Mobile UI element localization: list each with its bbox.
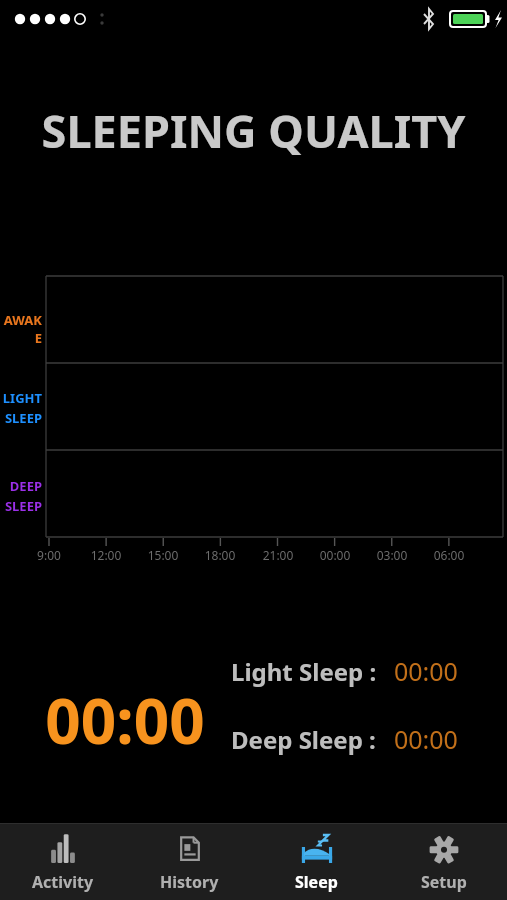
staticText: 12:00 — [81, 547, 131, 563]
staticText: 03:00 — [367, 547, 417, 563]
button[interactable]: History — [126, 824, 253, 900]
button[interactable]: Activity — [0, 824, 126, 900]
staticText: Setup — [421, 871, 467, 893]
staticText: 00:00 — [394, 654, 458, 688]
staticText: Light Sleep : — [231, 655, 377, 688]
staticText: SLEEPING QUALITY — [0, 100, 507, 161]
staticText: SLEEP — [0, 497, 42, 515]
staticText: 00:00 — [310, 547, 360, 563]
staticText: 06:00 — [424, 547, 474, 563]
staticText: 18:00 — [195, 547, 245, 563]
staticText: 00:00 — [30, 678, 220, 762]
staticText: 21:00 — [253, 547, 303, 563]
staticText: Deep Sleep : — [231, 723, 376, 756]
staticText: 9:00 — [24, 547, 74, 563]
button[interactable]: Sleep — [253, 824, 380, 900]
button[interactable]: Setup — [380, 824, 507, 900]
staticText: DEEP — [0, 477, 42, 495]
staticText: Activity — [32, 871, 94, 893]
staticText: AWAKE — [0, 311, 42, 347]
staticText: SLEEP — [0, 409, 42, 427]
staticText: 15:00 — [138, 547, 188, 563]
staticText: Sleep — [295, 871, 338, 893]
staticText: 00:00 — [394, 722, 458, 756]
staticText: History — [160, 871, 219, 893]
staticText: LIGHT — [0, 389, 42, 407]
